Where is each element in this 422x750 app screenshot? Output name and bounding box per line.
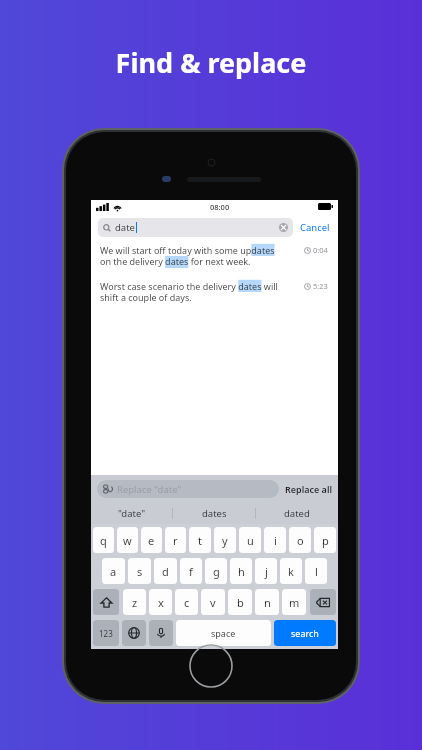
button[interactable]: z bbox=[123, 589, 146, 615]
staticText: r bbox=[173, 533, 178, 548]
button[interactable]: l bbox=[305, 558, 327, 584]
button[interactable]: a bbox=[102, 558, 125, 584]
button[interactable]: u bbox=[239, 527, 261, 553]
staticText: n bbox=[264, 595, 271, 610]
button[interactable]: k bbox=[280, 558, 302, 584]
button[interactable]: dates bbox=[173, 502, 255, 524]
button[interactable]: i bbox=[264, 527, 286, 553]
staticText: s bbox=[137, 564, 143, 579]
staticText: x bbox=[158, 595, 164, 610]
staticText: date bbox=[115, 221, 135, 234]
button[interactable]: dated bbox=[256, 502, 338, 524]
button[interactable]: q bbox=[93, 527, 114, 553]
button[interactable]: "date" bbox=[91, 502, 172, 524]
button[interactable]: Replace all bbox=[285, 483, 332, 495]
staticText: "date" bbox=[118, 507, 146, 520]
button[interactable]: search bbox=[274, 620, 336, 646]
button[interactable]: date bbox=[98, 218, 293, 237]
button[interactable]: p bbox=[314, 527, 336, 553]
staticText: p bbox=[322, 533, 329, 548]
button[interactable]: e bbox=[141, 527, 162, 553]
button[interactable]: We will start off today with some update… bbox=[100, 244, 338, 268]
button[interactable]: y bbox=[214, 527, 236, 553]
button[interactable]: Switch keyboard bbox=[122, 620, 146, 646]
button[interactable]: Cancel bbox=[299, 221, 331, 234]
staticText: i bbox=[274, 533, 277, 548]
staticText: z bbox=[132, 595, 138, 610]
button[interactable]: x bbox=[149, 589, 172, 615]
staticText: k bbox=[288, 564, 294, 579]
button[interactable]: d bbox=[154, 558, 177, 584]
button[interactable]: Shift bbox=[93, 589, 119, 615]
staticText: m bbox=[289, 595, 300, 610]
staticText: Worst case scenario the delivery dates w… bbox=[100, 280, 300, 304]
button[interactable]: b bbox=[228, 589, 252, 615]
button[interactable]: s bbox=[128, 558, 151, 584]
staticText: h bbox=[238, 564, 245, 579]
staticText: g bbox=[213, 564, 220, 579]
staticText: dated bbox=[284, 507, 310, 520]
button[interactable]: f bbox=[180, 558, 202, 584]
staticText: search bbox=[291, 627, 319, 639]
staticText: t bbox=[198, 533, 202, 548]
staticText: b bbox=[237, 595, 244, 610]
button[interactable]: space bbox=[176, 620, 271, 646]
staticText: 5:23 bbox=[313, 281, 328, 291]
staticText: Cancel bbox=[300, 221, 330, 234]
staticText: e bbox=[148, 533, 155, 548]
staticText: q bbox=[100, 533, 107, 548]
staticText: dates bbox=[202, 507, 227, 520]
button[interactable]: o bbox=[289, 527, 311, 553]
staticText: d bbox=[162, 564, 169, 579]
staticText: c bbox=[184, 595, 190, 610]
button[interactable]: h bbox=[230, 558, 252, 584]
button[interactable]: Dictate bbox=[149, 620, 173, 646]
button[interactable]: m bbox=[282, 589, 306, 615]
staticText: j bbox=[265, 564, 268, 579]
staticText: w bbox=[123, 533, 132, 548]
button[interactable]: Worst case scenario the delivery dates w… bbox=[100, 280, 338, 304]
staticText: 123 bbox=[99, 628, 113, 639]
staticText: u bbox=[247, 533, 254, 548]
staticText: 08:00 bbox=[210, 202, 230, 212]
staticText: l bbox=[315, 564, 318, 579]
staticText: Replace "date" bbox=[117, 483, 182, 496]
button[interactable]: n bbox=[255, 589, 279, 615]
button[interactable]: r bbox=[165, 527, 186, 553]
button[interactable]: g bbox=[205, 558, 227, 584]
staticText: o bbox=[297, 533, 304, 548]
button[interactable]: w bbox=[117, 527, 138, 553]
button[interactable]: Replace "date" bbox=[97, 480, 279, 498]
button[interactable]: v bbox=[201, 589, 225, 615]
staticText: a bbox=[110, 564, 117, 579]
staticText: Replace all bbox=[285, 483, 332, 495]
staticText: v bbox=[210, 595, 216, 610]
staticText: space bbox=[211, 627, 236, 639]
button[interactable]: Clear search bbox=[279, 223, 288, 232]
staticText: We will start off today with some update… bbox=[100, 244, 300, 268]
button[interactable]: t bbox=[189, 527, 211, 553]
staticText: y bbox=[222, 533, 228, 548]
button[interactable]: Backspace bbox=[310, 589, 336, 615]
button[interactable]: j bbox=[255, 558, 277, 584]
staticText: Find & replace bbox=[0, 44, 422, 81]
button[interactable]: 123 bbox=[93, 620, 119, 646]
staticText: 0:04 bbox=[313, 245, 328, 255]
button[interactable]: c bbox=[175, 589, 198, 615]
staticText: f bbox=[189, 564, 193, 579]
